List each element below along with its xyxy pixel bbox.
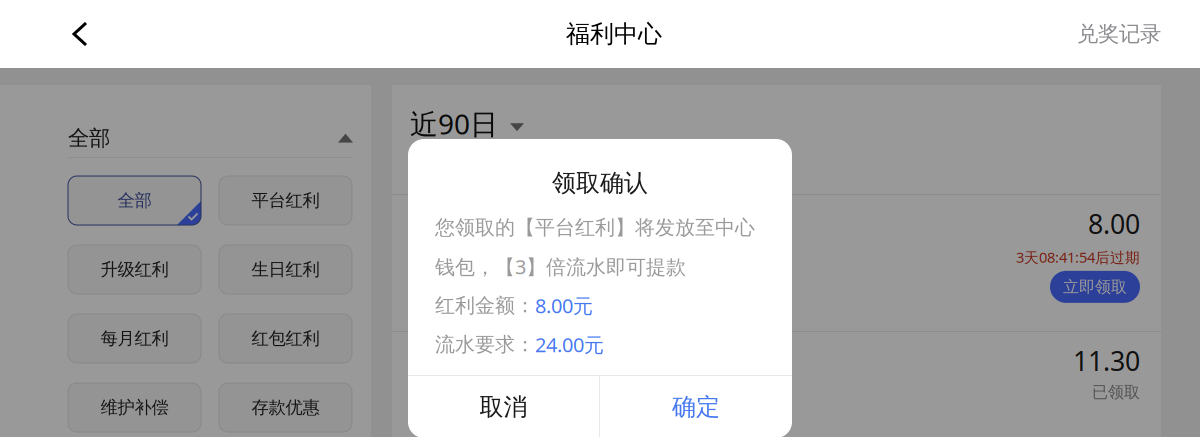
button[interactable]: 红包红利 xyxy=(219,314,352,363)
staticText: 流水要求： xyxy=(435,332,535,357)
button[interactable]: 全部 xyxy=(68,176,201,225)
button[interactable]: 取消 xyxy=(408,376,599,437)
button[interactable]: 生日红利 xyxy=(219,245,352,294)
button[interactable]: 升级红利 xyxy=(68,245,201,294)
button[interactable]: 立即领取 xyxy=(1050,271,1140,303)
staticText: 钱包，【3】倍流水即可提款 xyxy=(435,253,686,280)
staticText: 平台红利 xyxy=(251,190,319,211)
button[interactable]: 确定 xyxy=(600,376,792,437)
staticText: 您领取的【平台红利】将发放至中心 xyxy=(435,215,755,240)
button[interactable]: Back xyxy=(48,2,112,66)
button[interactable]: 近90日 xyxy=(392,85,1161,147)
staticText: 近90日 xyxy=(410,105,498,142)
staticText: 红利金额： xyxy=(435,293,535,318)
staticText: 全部 xyxy=(68,125,110,151)
staticText: 24.00元 xyxy=(535,331,604,358)
staticText: 11.30 xyxy=(1073,343,1140,378)
staticText: 生日红利 xyxy=(251,259,319,280)
staticText: 已领取 xyxy=(1092,382,1140,402)
staticText: 每月红利 xyxy=(100,328,168,349)
staticText: 全部 xyxy=(117,190,151,211)
button[interactable]: 每月红利 xyxy=(68,314,201,363)
staticText: 福利中心 xyxy=(566,19,662,49)
staticText: 兑奖记录 xyxy=(1077,21,1161,47)
staticText: 8.00 xyxy=(1088,206,1140,241)
staticText: 红包红利 xyxy=(251,328,319,349)
staticText: 升级红利 xyxy=(100,259,168,280)
button[interactable]: 平台红利 xyxy=(219,176,352,225)
staticText: 立即领取 xyxy=(1063,277,1127,297)
staticText: 存款优惠 xyxy=(251,397,319,418)
button[interactable]: 存款优惠 xyxy=(219,383,352,432)
button[interactable]: 兑奖记录 xyxy=(1064,9,1174,59)
staticText: 确定 xyxy=(672,392,720,422)
staticText: 取消 xyxy=(479,392,527,422)
staticText: 维护补偿 xyxy=(100,397,168,418)
staticText: 3天08:41:54后过期 xyxy=(1016,247,1140,267)
staticText: 领取确认 xyxy=(552,168,648,198)
button[interactable]: 维护补偿 xyxy=(68,383,201,432)
staticText: 8.00元 xyxy=(535,292,593,319)
button[interactable]: 全部 xyxy=(68,105,353,157)
